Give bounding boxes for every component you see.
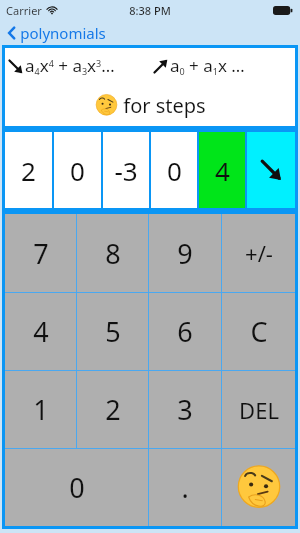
staticText: 8: [105, 235, 121, 272]
button[interactable]: 5: [77, 293, 148, 370]
staticText: 9: [177, 235, 193, 272]
button[interactable]: 7: [5, 214, 76, 292]
staticText: C: [250, 313, 268, 350]
button[interactable]: 2: [77, 371, 148, 448]
button[interactable]: .: [149, 449, 221, 526]
button[interactable]: 4: [199, 132, 245, 208]
button[interactable]: 2: [5, 132, 52, 208]
button[interactable]: 0: [5, 449, 148, 526]
button[interactable]: -3: [103, 132, 149, 208]
staticText: 0: [70, 153, 85, 188]
staticText: +/-: [245, 238, 273, 268]
button[interactable]: Show steps: [222, 449, 295, 526]
staticText: 5: [105, 313, 121, 350]
staticText: 0: [167, 153, 182, 188]
staticText: polynomials: [20, 23, 106, 43]
staticText: a4x4 + a3x3…: [25, 54, 115, 78]
button[interactable]: a0 + a1x …: [150, 48, 295, 84]
staticText: 3: [177, 391, 193, 428]
staticText: 4: [215, 153, 230, 188]
staticText: 2: [105, 391, 121, 428]
button[interactable]: 4: [5, 293, 76, 370]
button[interactable]: 6: [149, 293, 221, 370]
button[interactable]: a4x4 + a3x3…: [5, 48, 150, 84]
staticText: 0: [69, 469, 85, 506]
staticText: DEL: [239, 395, 279, 425]
button[interactable]: for steps: [5, 84, 295, 126]
staticText: 7: [33, 235, 49, 272]
staticText: 1: [33, 391, 49, 428]
button[interactable]: 8: [77, 214, 148, 292]
button[interactable]: DEL: [222, 371, 295, 448]
staticText: a0 + a1x …: [170, 54, 245, 78]
staticText: 6: [177, 313, 193, 350]
button[interactable]: polynomials: [5, 21, 108, 45]
button[interactable]: C: [222, 293, 295, 370]
staticText: 4: [33, 313, 49, 350]
staticText: .: [181, 469, 189, 506]
button[interactable]: 9: [149, 214, 221, 292]
staticText: -3: [114, 153, 138, 188]
button[interactable]: Next coefficient: [247, 132, 295, 208]
button[interactable]: 0: [151, 132, 197, 208]
button[interactable]: 1: [5, 371, 76, 448]
staticText: 2: [21, 153, 36, 188]
button[interactable]: +/-: [222, 214, 295, 292]
button[interactable]: 3: [149, 371, 221, 448]
button[interactable]: 0: [54, 132, 101, 208]
staticText: for steps: [123, 92, 206, 119]
staticText: Carrier: [6, 3, 42, 18]
staticText: 8:38 PM: [129, 3, 171, 18]
